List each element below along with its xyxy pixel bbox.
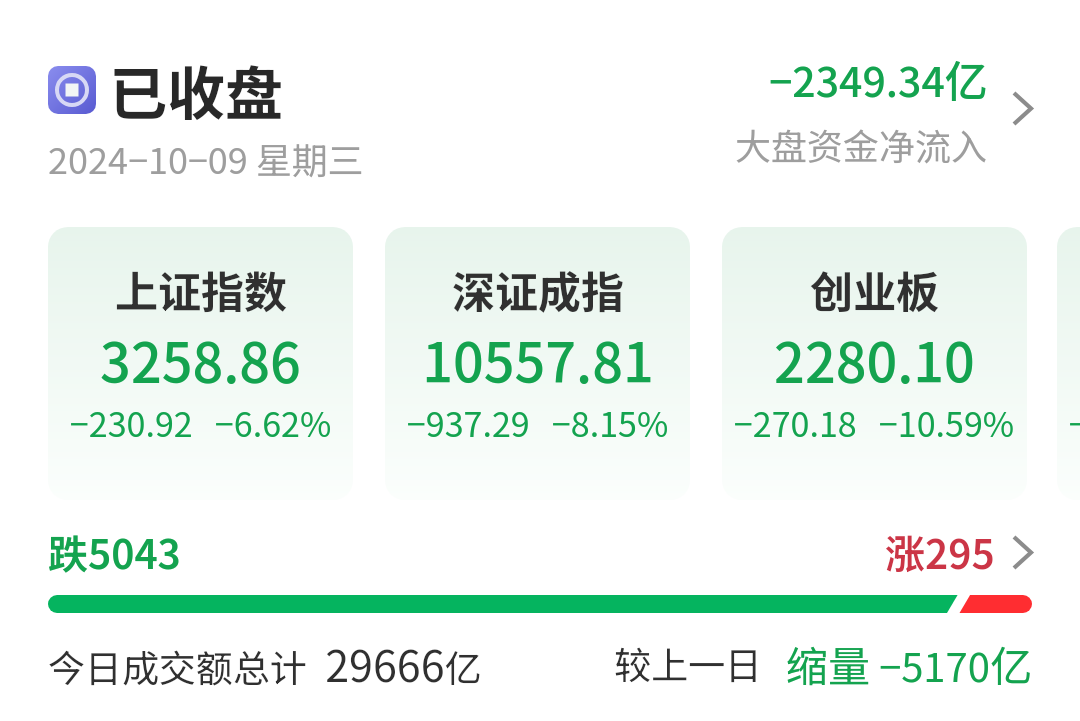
staticText: −230.92 (70, 398, 193, 447)
button[interactable]: 上证指数 (48, 227, 353, 500)
staticText: −120.18 (1069, 398, 1080, 447)
other: Market closed (48, 66, 96, 114)
staticText: −8.15% (552, 398, 669, 447)
staticText: 大盘资金净流入 (735, 118, 988, 170)
other: Advancers vs decliners ratio (48, 595, 1032, 613)
button[interactable]: 深证成指 (385, 227, 690, 500)
staticText: −270.18 (734, 398, 857, 447)
button[interactable]: 涨295 (885, 523, 1033, 581)
staticText: 已收盘 (109, 48, 284, 132)
button[interactable]: Market closed (48, 48, 735, 184)
staticText: 3258.86 (100, 320, 301, 398)
other: Capital flow detail (1012, 91, 1033, 126)
staticText: 2280.10 (774, 320, 975, 398)
other: Advancers detail (1012, 535, 1033, 570)
staticText: 今日成交额总计 29666亿 (48, 632, 482, 694)
button[interactable]: 创业板 (722, 227, 1027, 500)
staticText: 10557.81 (422, 320, 654, 398)
staticText: 较上一日 (614, 636, 762, 690)
staticText: 缩量 −5170亿 (786, 633, 1032, 694)
button[interactable]: 跌5043 (48, 523, 181, 581)
staticText: 创业板 (810, 258, 939, 320)
button[interactable]: 科创50 (1057, 227, 1080, 500)
staticText: 上证指数 (115, 258, 287, 320)
button[interactable]: −2349.34亿 (735, 47, 1033, 170)
staticText: 涨295 (885, 523, 995, 581)
staticText: −10.59% (879, 398, 1015, 447)
staticText: 2024−10−09 星期三 (48, 132, 364, 184)
staticText: 跌5043 (48, 523, 181, 581)
staticText: −2349.34亿 (769, 47, 988, 109)
staticText: −937.29 (407, 398, 530, 447)
staticText: 深证成指 (452, 258, 624, 320)
staticText: −6.62% (215, 398, 332, 447)
